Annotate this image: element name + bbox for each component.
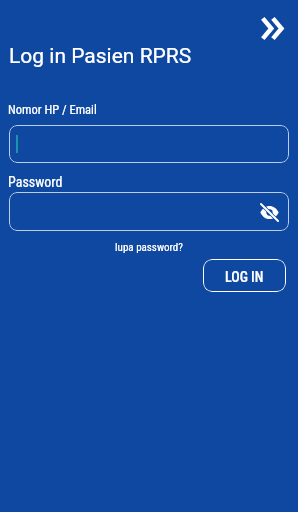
button[interactable]: LOG IN (203, 259, 286, 292)
staticText: Password (8, 174, 63, 190)
button[interactable] (9, 125, 289, 163)
staticText: Log in Pasien RPRS (9, 44, 192, 69)
button[interactable]: Show password (9, 192, 289, 231)
staticText: lupa password? (0, 241, 298, 254)
staticText: Nomor HP / Email (8, 102, 97, 117)
staticText: LOG IN (225, 269, 264, 285)
button[interactable]: Next (257, 12, 289, 44)
button[interactable]: Show password (259, 202, 279, 222)
